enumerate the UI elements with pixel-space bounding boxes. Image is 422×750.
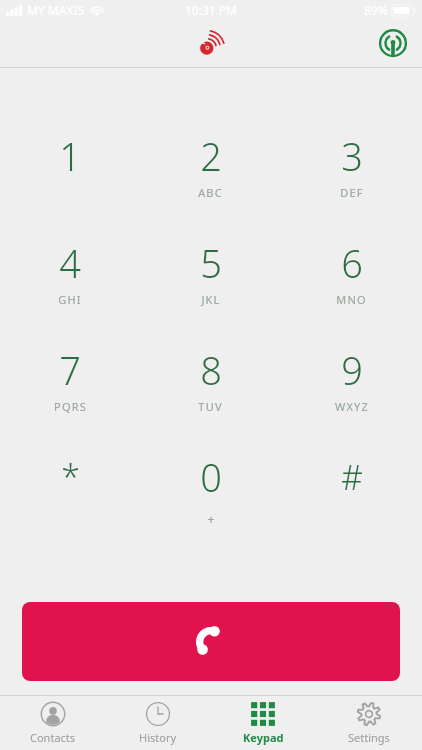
button[interactable]: Broadcast: [372, 23, 414, 65]
button[interactable]: Call: [22, 602, 400, 681]
button[interactable]: Contacts: [0, 696, 105, 750]
staticText: ABC: [198, 185, 223, 200]
staticText: 7: [59, 344, 81, 396]
staticText: DEF: [340, 185, 364, 200]
staticText: 5: [200, 237, 222, 289]
staticText: MY MAXIS: [27, 2, 85, 18]
button[interactable]: 6: [281, 234, 422, 327]
staticText: 89%: [364, 2, 388, 18]
button[interactable]: History: [105, 696, 210, 750]
staticText: 1: [59, 130, 81, 182]
button[interactable]: 8: [140, 341, 281, 434]
button[interactable]: 3: [281, 127, 422, 220]
staticText: #: [341, 454, 363, 500]
staticText: Contacts: [30, 730, 76, 745]
staticText: WXYZ: [335, 399, 369, 414]
staticText: TUV: [198, 399, 223, 414]
staticText: MNO: [336, 292, 367, 307]
staticText: *: [61, 454, 80, 500]
staticText: 10:31 PM: [185, 2, 237, 18]
staticText: 6: [341, 237, 363, 289]
button[interactable]: 9: [281, 341, 422, 434]
staticText: +: [207, 510, 215, 528]
staticText: Keypad: [243, 730, 284, 745]
staticText: GHI: [58, 292, 82, 307]
staticText: 9: [341, 344, 363, 396]
staticText: Settings: [348, 730, 390, 745]
staticText: 4: [59, 237, 81, 289]
button[interactable]: *: [0, 448, 140, 541]
button[interactable]: 4: [0, 234, 140, 327]
button[interactable]: 5: [140, 234, 281, 327]
button[interactable]: 7: [0, 341, 140, 434]
staticText: JKL: [201, 292, 221, 307]
button[interactable]: #: [281, 448, 422, 541]
button[interactable]: 1: [0, 127, 140, 220]
staticText: 0: [200, 451, 222, 503]
staticText: PQRS: [54, 399, 87, 414]
button[interactable]: Network logo: [189, 22, 233, 66]
button[interactable]: Keypad: [210, 696, 316, 750]
button[interactable]: 0: [140, 448, 281, 541]
button[interactable]: Settings: [316, 696, 422, 750]
button[interactable]: 2: [140, 127, 281, 220]
staticText: 3: [341, 130, 363, 182]
staticText: 8: [200, 344, 222, 396]
staticText: History: [139, 730, 177, 745]
staticText: 2: [200, 130, 222, 182]
